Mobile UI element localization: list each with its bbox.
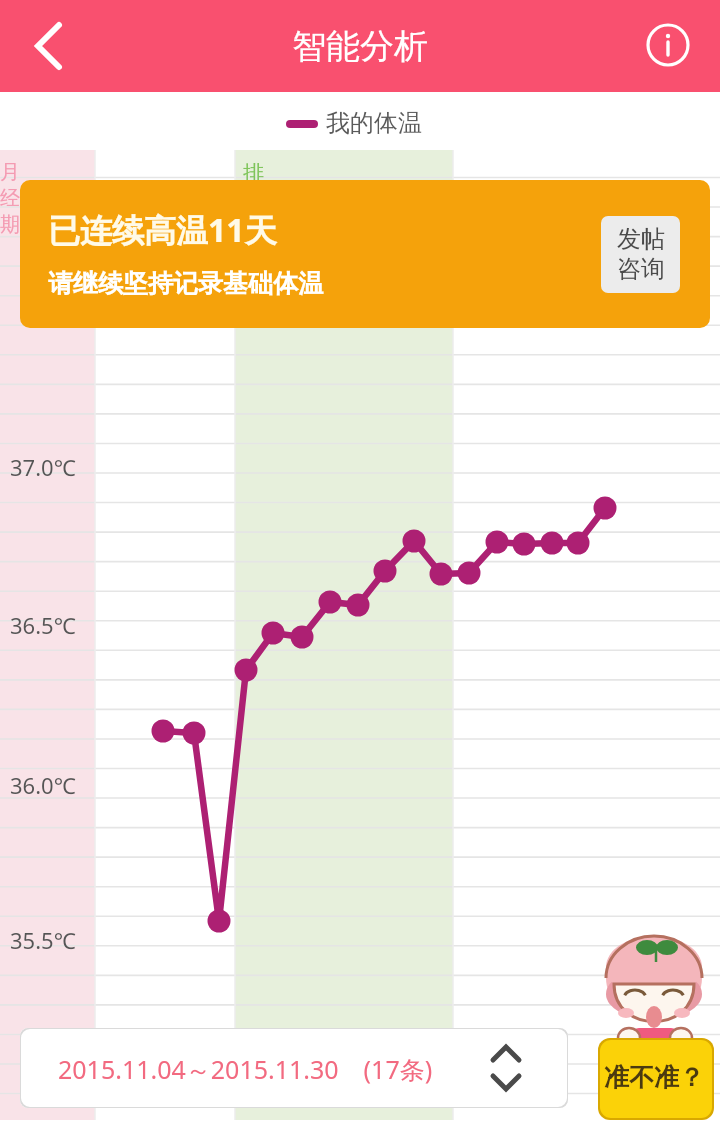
- staticText: 智能分析: [292, 25, 428, 68]
- button[interactable]: Back: [8, 6, 88, 86]
- staticText: 37.0℃: [10, 452, 76, 482]
- button[interactable]: 发帖 咨询: [601, 216, 680, 293]
- button[interactable]: 准不准: [588, 928, 720, 1128]
- staticText: 发帖 咨询: [617, 224, 665, 285]
- staticText: 请继续坚持记录基础体温: [48, 268, 323, 299]
- staticText: 2015.11.04～2015.11.30 (17条): [58, 1052, 433, 1086]
- staticText: 35.5℃: [10, 925, 76, 955]
- button[interactable]: Info: [632, 9, 704, 81]
- staticText: 36.0℃: [10, 770, 76, 800]
- staticText: 准不准？: [604, 1062, 704, 1093]
- button[interactable]: 已连续高温11天: [20, 180, 710, 328]
- button[interactable]: 2015.11.04～2015.11.30 (17条): [20, 1028, 568, 1108]
- staticText: 已连续高温11天: [48, 208, 277, 252]
- staticText: 排: [243, 160, 264, 186]
- staticText: 月 经 期: [0, 160, 20, 237]
- staticText: 我的体温: [326, 108, 422, 138]
- staticText: 36.5℃: [10, 610, 76, 640]
